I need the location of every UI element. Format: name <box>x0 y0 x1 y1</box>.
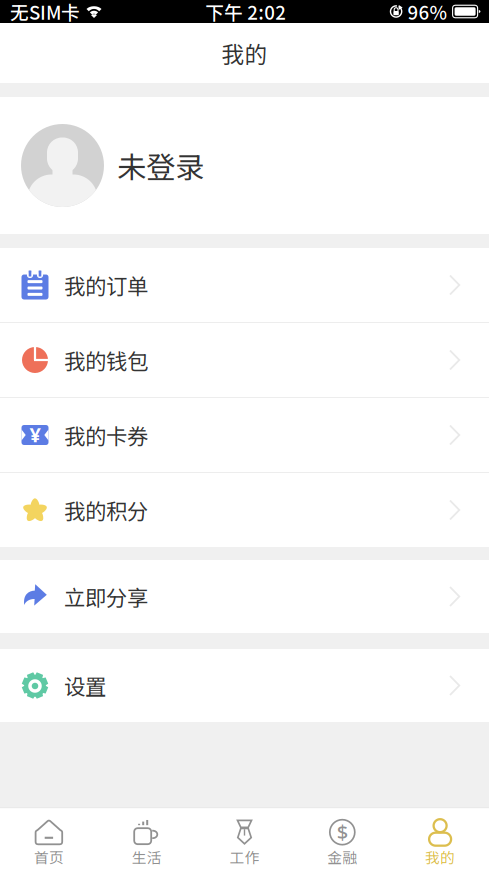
button[interactable]: 生活 <box>98 808 196 875</box>
button[interactable]: 未登录 <box>0 97 489 234</box>
button[interactable]: ¥ <box>0 398 489 472</box>
staticText: 我的 <box>221 37 267 69</box>
staticText: 生活 <box>132 846 162 867</box>
button[interactable]: 立即分享 <box>0 560 489 633</box>
button[interactable]: 我的 <box>391 808 489 875</box>
button[interactable]: 我的订单 <box>0 248 489 322</box>
staticText: 我的卡券 <box>64 420 148 450</box>
staticText: 工作 <box>229 846 259 867</box>
button[interactable]: 设置 <box>0 649 489 722</box>
staticText: ¥ <box>29 421 40 448</box>
staticText: 设置 <box>64 670 106 701</box>
staticText: 我的积分 <box>64 495 148 525</box>
staticText: 无SIM卡 <box>10 0 80 25</box>
staticText: $ <box>337 818 348 845</box>
button[interactable]: 我的积分 <box>0 473 489 547</box>
button[interactable]: 首页 <box>0 808 98 875</box>
button[interactable]: 我的钱包 <box>0 323 489 397</box>
staticText: 下午 2:02 <box>205 0 286 25</box>
staticText: 未登录 <box>117 144 204 187</box>
staticText: 立即分享 <box>64 581 148 612</box>
staticText: 金融 <box>327 846 357 867</box>
button[interactable]: $ <box>293 808 391 875</box>
button[interactable]: 工作 <box>196 808 293 875</box>
staticText: 96% <box>408 0 448 25</box>
staticText: 我的钱包 <box>64 345 148 375</box>
staticText: 我的 <box>425 846 455 867</box>
staticText: 首页 <box>34 846 64 867</box>
staticText: 我的订单 <box>64 270 148 300</box>
